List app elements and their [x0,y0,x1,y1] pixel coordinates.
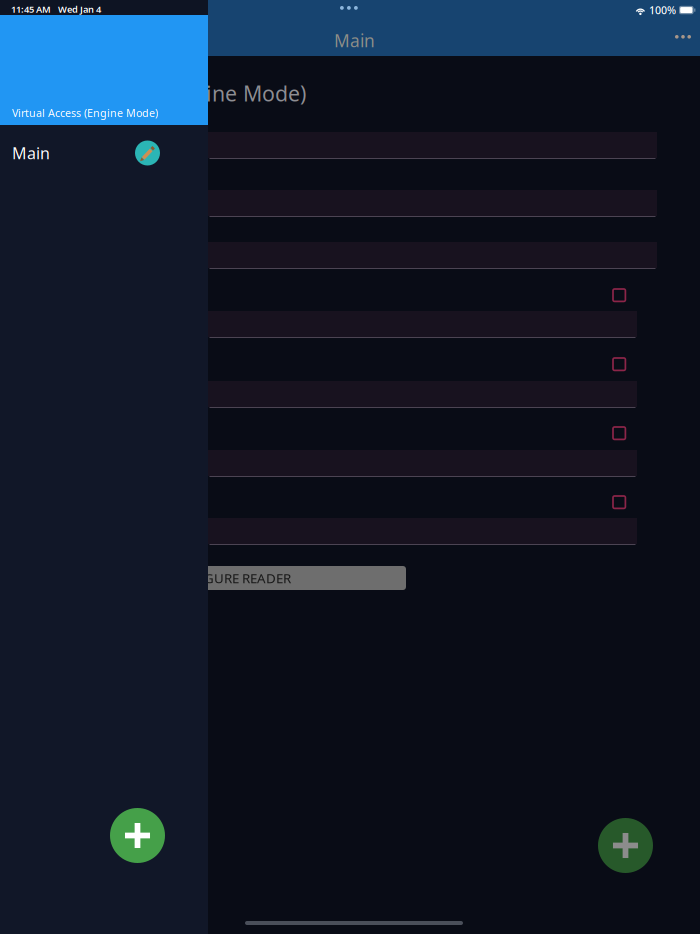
button[interactable]: Add item [110,808,165,863]
staticText: Main [12,142,50,164]
button[interactable]: Main [0,126,208,178]
button[interactable]: CONFIGURE READER [172,566,406,590]
button[interactable]: Checkbox [607,283,631,307]
button[interactable]: Add [598,818,653,873]
staticText: Virtual Access (Engine Mode) [17,79,306,107]
staticText: Virtual Access (Engine Mode) [12,106,158,120]
button[interactable]: More options [666,26,700,48]
staticText: Main [334,29,375,52]
button[interactable]: Checkbox [607,421,631,445]
staticText: CONFIGURE READER [164,569,291,587]
staticText: Wed Jan 4 [58,3,101,15]
staticText: 100% [649,3,676,17]
button[interactable]: Checkbox [607,490,631,514]
staticText: 11:45 AM [11,3,51,15]
button[interactable]: Checkbox [607,352,631,376]
